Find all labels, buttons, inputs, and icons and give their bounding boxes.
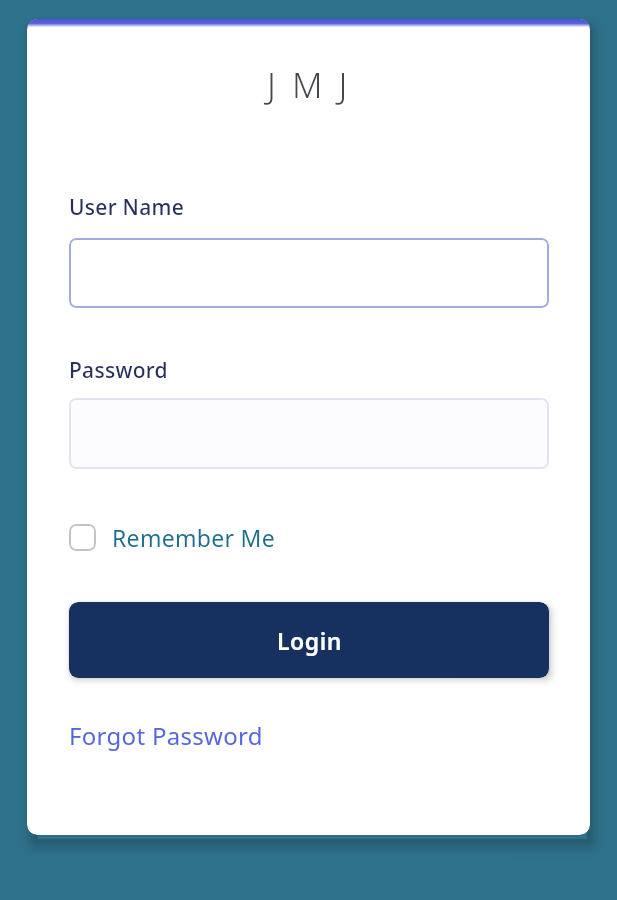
button[interactable]: Login — [69, 602, 549, 678]
staticText: J M J — [267, 61, 351, 109]
button[interactable]: Forgot Password — [69, 719, 263, 752]
staticText: Remember Me — [112, 522, 275, 553]
button[interactable] — [69, 238, 549, 308]
staticText: Password — [69, 356, 168, 385]
button[interactable] — [69, 398, 549, 469]
staticText: Login — [277, 625, 342, 656]
button[interactable]: Remember Me — [69, 522, 275, 553]
staticText: User Name — [69, 193, 185, 222]
